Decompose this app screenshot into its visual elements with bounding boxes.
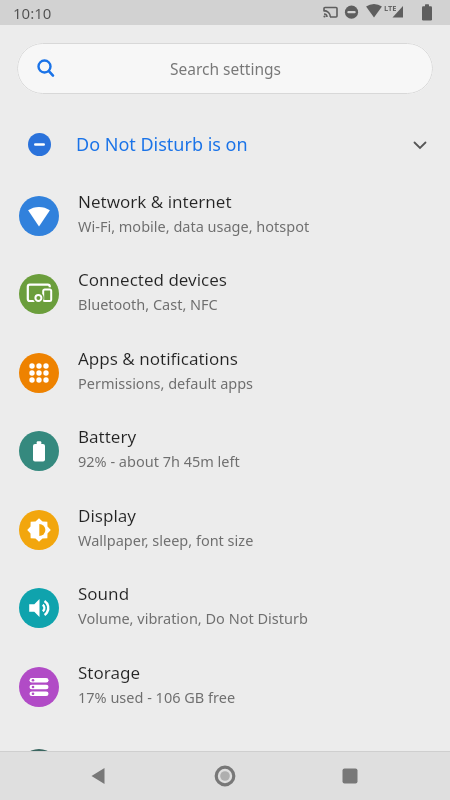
staticText: 92% - about 7h 45m left (78, 451, 240, 471)
button[interactable] (0, 726, 450, 800)
button[interactable] (75, 752, 123, 800)
staticText: Apps & notifications (78, 347, 238, 370)
button[interactable]: Storage (0, 647, 450, 726)
staticText: Wallpaper, sleep, font size (78, 530, 254, 550)
staticText: LTE (384, 3, 397, 13)
staticText: Bluetooth, Cast, NFC (78, 294, 218, 314)
staticText: Sound (78, 582, 130, 605)
staticText: Volume, vibration, Do Not Disturb (78, 608, 308, 628)
button[interactable]: Search settings (17, 43, 433, 94)
staticText: Display (78, 504, 136, 527)
button[interactable] (201, 752, 249, 800)
button[interactable]: Network & internet (0, 176, 450, 255)
button[interactable]: Apps & notifications (0, 333, 450, 412)
button[interactable]: Battery (0, 412, 450, 490)
staticText: Search settings (170, 58, 281, 79)
button[interactable]: Connected devices (0, 255, 450, 333)
button[interactable]: Sound (0, 569, 450, 647)
staticText: Do Not Disturb is on (76, 132, 248, 157)
staticText: Network & internet (78, 190, 232, 213)
staticText: Wi-Fi, mobile, data usage, hotspot (78, 216, 310, 236)
button[interactable]: Display (0, 490, 450, 569)
staticText: Storage (78, 661, 141, 684)
staticText: Permissions, default apps (78, 373, 254, 393)
staticText: 17% used - 106 GB free (78, 687, 236, 707)
staticText: Battery (78, 425, 137, 448)
staticText: 10:10 (13, 3, 52, 23)
button[interactable] (326, 752, 374, 800)
staticText: Connected devices (78, 268, 228, 291)
button[interactable]: Do Not Disturb is on (0, 113, 450, 176)
